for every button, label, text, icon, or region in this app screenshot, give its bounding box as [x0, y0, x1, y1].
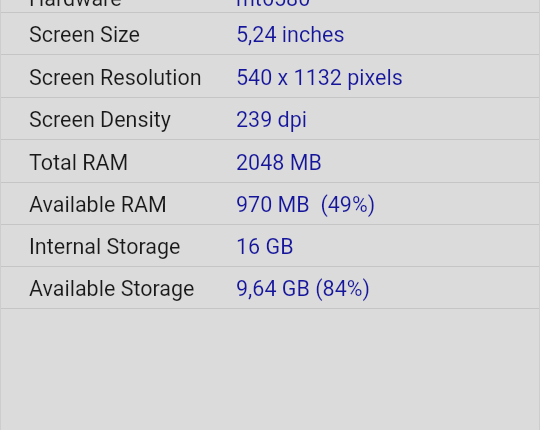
button[interactable]: Internal Storage [0, 225, 540, 266]
staticText: Available Storage [29, 276, 195, 301]
staticText: 540 x 1132 pixels [236, 65, 403, 90]
staticText: 239 dpi [236, 107, 308, 132]
staticText: Screen Density [29, 107, 172, 132]
button[interactable]: Screen Size [0, 13, 540, 54]
staticText: 2048 MB [236, 150, 322, 175]
staticText: mt6580 [236, 0, 311, 11]
staticText: 16 GB [236, 234, 294, 259]
staticText: Internal Storage [29, 234, 181, 259]
staticText: Screen Resolution [29, 65, 202, 90]
button[interactable]: Available RAM [0, 183, 540, 224]
staticText: Screen Size [29, 22, 141, 47]
staticText: 9,64 GB (84%) [236, 276, 370, 301]
staticText: 5,24 inches [236, 22, 345, 47]
staticText: Hardware [29, 0, 122, 11]
staticText: Total RAM [29, 150, 129, 175]
staticText: Available RAM [29, 192, 167, 217]
staticText: 970 MB (49%) [236, 192, 376, 217]
button[interactable]: Total RAM [0, 140, 540, 182]
button[interactable]: Screen Resolution [0, 55, 540, 97]
button[interactable]: Hardware [0, 0, 540, 12]
button[interactable]: Available Storage [0, 267, 540, 308]
button[interactable]: Screen Density [0, 98, 540, 139]
